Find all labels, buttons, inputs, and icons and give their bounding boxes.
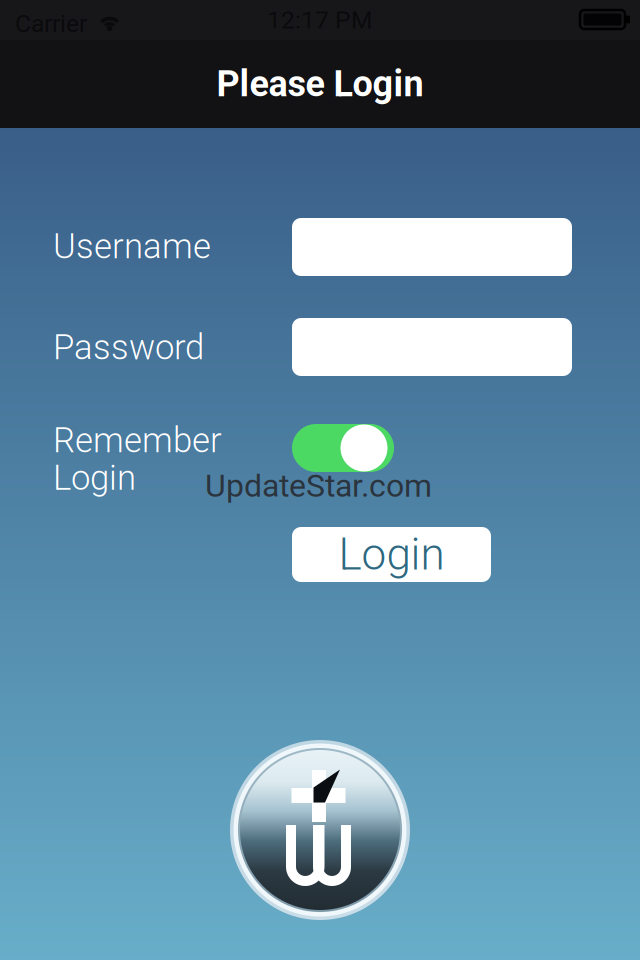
staticText: Carrier	[15, 9, 87, 38]
staticText: Remember	[53, 420, 222, 461]
button[interactable]: Remember Login toggle, on	[292, 424, 394, 472]
button[interactable]: Password field	[292, 318, 572, 376]
staticText: 12:17 PM	[267, 5, 373, 34]
staticText: Login	[53, 458, 136, 498]
staticText: Username	[53, 226, 211, 267]
staticText: Please Login	[216, 63, 423, 105]
staticText: Password	[53, 327, 204, 368]
staticText: UpdateStar.com	[205, 467, 432, 504]
staticText: Login	[338, 529, 444, 580]
button[interactable]: Login	[292, 527, 491, 582]
button[interactable]: Username field	[292, 218, 572, 276]
